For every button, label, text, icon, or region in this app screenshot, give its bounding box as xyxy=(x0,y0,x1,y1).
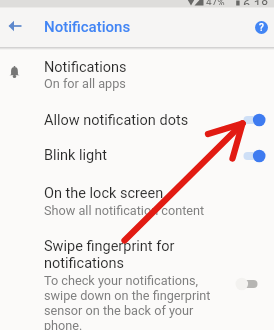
button[interactable]: Off xyxy=(235,277,260,291)
staticText: Blink light xyxy=(44,147,107,164)
button[interactable]: Blink light xyxy=(0,141,274,173)
button[interactable]: On xyxy=(241,113,266,127)
staticText: On for all apps xyxy=(44,76,126,91)
button[interactable]: Notifications xyxy=(0,52,274,96)
button[interactable]: On the lock screen xyxy=(0,181,274,219)
staticText: Notifications xyxy=(44,59,127,76)
staticText: Swipe fingerprint for notifications xyxy=(44,238,175,272)
staticText: To check your notifications, swipe down … xyxy=(44,273,211,330)
staticText: Notifications xyxy=(44,18,131,36)
button[interactable]: Swipe fingerprint for notifications xyxy=(0,235,274,330)
staticText: Show all notification content xyxy=(44,203,205,218)
staticText: Allow notification dots xyxy=(44,112,189,129)
button[interactable]: Navigate up xyxy=(3,14,27,38)
button[interactable]: Allow notification dots xyxy=(0,105,274,137)
button[interactable]: On xyxy=(241,149,266,163)
staticText: 6.18 xyxy=(243,0,269,5)
button[interactable]: Help xyxy=(249,15,273,39)
staticText: ? xyxy=(259,22,264,34)
staticText: 47% xyxy=(206,0,225,5)
staticText: On the lock screen xyxy=(44,185,164,202)
